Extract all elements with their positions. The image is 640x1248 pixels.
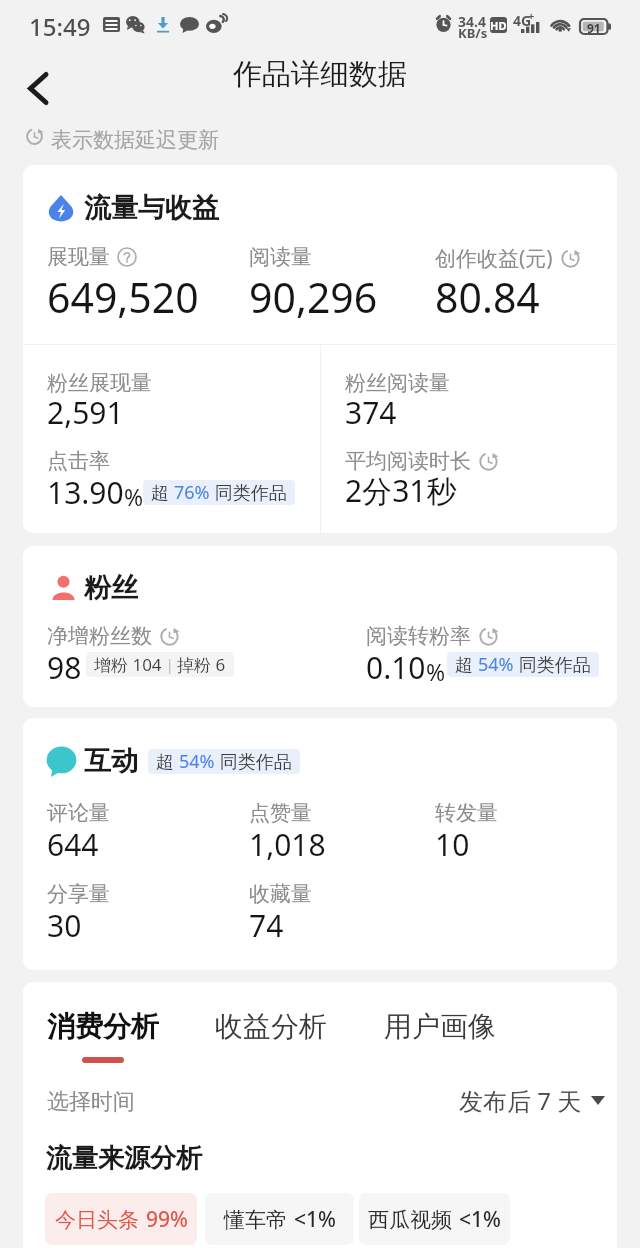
button[interactable]: 收益分析 — [213, 1009, 329, 1069]
staticText: 粉丝展现量 — [47, 370, 152, 396]
staticText: HD — [490, 18, 507, 33]
staticText: 同类作品 — [215, 749, 292, 774]
staticText: 超 — [156, 749, 179, 774]
staticText: <1% — [294, 1205, 336, 1234]
staticText: 表示数据延迟更新 — [51, 127, 219, 153]
staticText: 10 — [435, 824, 470, 865]
staticText: + — [528, 8, 535, 23]
staticText: 76% — [174, 480, 210, 505]
staticText: 649,520 — [47, 269, 199, 325]
staticText: 流量来源分析 — [46, 1142, 202, 1175]
staticText: 懂车帝 — [224, 1207, 287, 1233]
staticText: <1% — [459, 1205, 501, 1234]
staticText: 80.84 — [435, 269, 540, 325]
staticText: 掉粉 6 — [177, 653, 226, 676]
staticText: 粉丝 — [84, 571, 138, 605]
staticText: 发布后 7 天 — [459, 1084, 582, 1117]
staticText: 同类作品 — [210, 480, 287, 505]
staticText: 用户画像 — [384, 1009, 496, 1044]
staticText: 54% — [478, 652, 514, 677]
staticText: 选择时间 — [47, 1088, 135, 1116]
staticText: 创作收益(元) — [435, 244, 553, 273]
staticText: 展现量 — [47, 244, 110, 270]
staticText: 同类作品 — [514, 652, 591, 677]
staticText: 374 — [345, 392, 397, 433]
button[interactable]: Back — [13, 62, 65, 114]
staticText: % — [426, 656, 446, 687]
staticText: 收益分析 — [215, 1009, 327, 1044]
staticText: 评论量 — [47, 800, 110, 826]
staticText: 54% — [179, 749, 215, 774]
staticText: 点击率 — [47, 448, 110, 474]
staticText: 西瓜视频 — [368, 1207, 452, 1233]
staticText: 2,591 — [47, 392, 124, 433]
staticText: 644 — [47, 824, 99, 865]
button[interactable]: 用户画像 — [382, 1009, 498, 1069]
staticText: 互动 — [84, 744, 138, 778]
staticText: 流量与收益 — [84, 191, 219, 225]
staticText: 0.10 — [366, 647, 426, 688]
staticText: 15:49 — [29, 10, 91, 43]
staticText: 98 — [47, 647, 82, 688]
staticText: 74 — [249, 905, 284, 946]
staticText: 净增粉丝数 — [47, 623, 152, 649]
staticText: 30 — [47, 905, 82, 946]
staticText: 1,018 — [249, 824, 326, 865]
button[interactable]: 发布后 7 天 — [459, 1084, 605, 1117]
staticText: 13.90 — [47, 472, 124, 513]
button[interactable]: 西瓜视频 — [359, 1193, 510, 1245]
staticText: 阅读转粉率 — [366, 623, 471, 649]
staticText: 分享量 — [47, 881, 110, 907]
staticText: 4G — [513, 11, 532, 30]
button[interactable]: 今日头条 — [45, 1193, 197, 1245]
staticText: 超 — [151, 480, 174, 505]
staticText: 90,296 — [249, 269, 378, 325]
button[interactable]: 消费分析 — [45, 1009, 161, 1069]
staticText: 消费分析 — [47, 1009, 159, 1044]
staticText: 阅读量 — [249, 244, 312, 270]
staticText: % — [124, 481, 144, 512]
staticText: 超 — [455, 652, 478, 677]
staticText: KB/s — [458, 24, 488, 42]
staticText: 平均阅读时长 — [345, 448, 471, 474]
staticText: | — [162, 655, 177, 674]
staticText: 作品详细数据 — [233, 56, 407, 93]
staticText: 收藏量 — [249, 881, 312, 907]
staticText: 粉丝阅读量 — [345, 370, 450, 396]
staticText: 今日头条 — [55, 1207, 139, 1233]
staticText: 点赞量 — [249, 800, 312, 826]
staticText: 转发量 — [435, 800, 498, 826]
staticText: 99% — [146, 1205, 188, 1234]
button[interactable]: 懂车帝 — [205, 1193, 354, 1245]
staticText: 2分31秒 — [345, 470, 457, 511]
staticText: 34.4 — [458, 12, 486, 31]
staticText: 增粉 104 — [94, 653, 162, 676]
staticText: 91 — [587, 20, 601, 36]
